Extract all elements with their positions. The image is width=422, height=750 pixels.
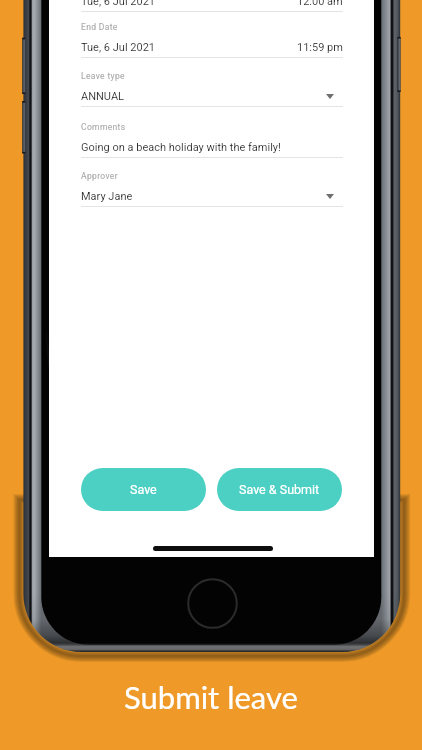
staticText: ANNUAL [81, 90, 124, 103]
staticText: Save & Submit [239, 482, 320, 497]
button[interactable]: Comments [81, 122, 343, 158]
staticText: Tue, 6 Jul 2021 [81, 0, 156, 8]
button[interactable]: Save [81, 468, 206, 511]
button[interactable]: Start Date [81, 0, 343, 12]
staticText: Approver [81, 171, 118, 181]
staticText: Going on a beach holiday with the family… [81, 141, 281, 154]
staticText: 11:59 pm [297, 41, 343, 54]
staticText: Comments [81, 122, 126, 132]
staticText: Tue, 6 Jul 2021 [81, 41, 156, 54]
other: Home [187, 578, 238, 629]
button[interactable]: Leave type [81, 71, 343, 107]
staticText: Mary Jane [81, 190, 133, 203]
staticText: Save [130, 482, 157, 497]
button[interactable]: Approver [81, 171, 343, 207]
staticText: Submit leave [124, 678, 298, 715]
staticText: 12:00 am [297, 0, 343, 8]
staticText: Leave type [81, 71, 125, 81]
button[interactable]: Save & Submit [217, 468, 342, 511]
button[interactable]: End Date [81, 22, 343, 58]
staticText: End Date [81, 22, 118, 32]
